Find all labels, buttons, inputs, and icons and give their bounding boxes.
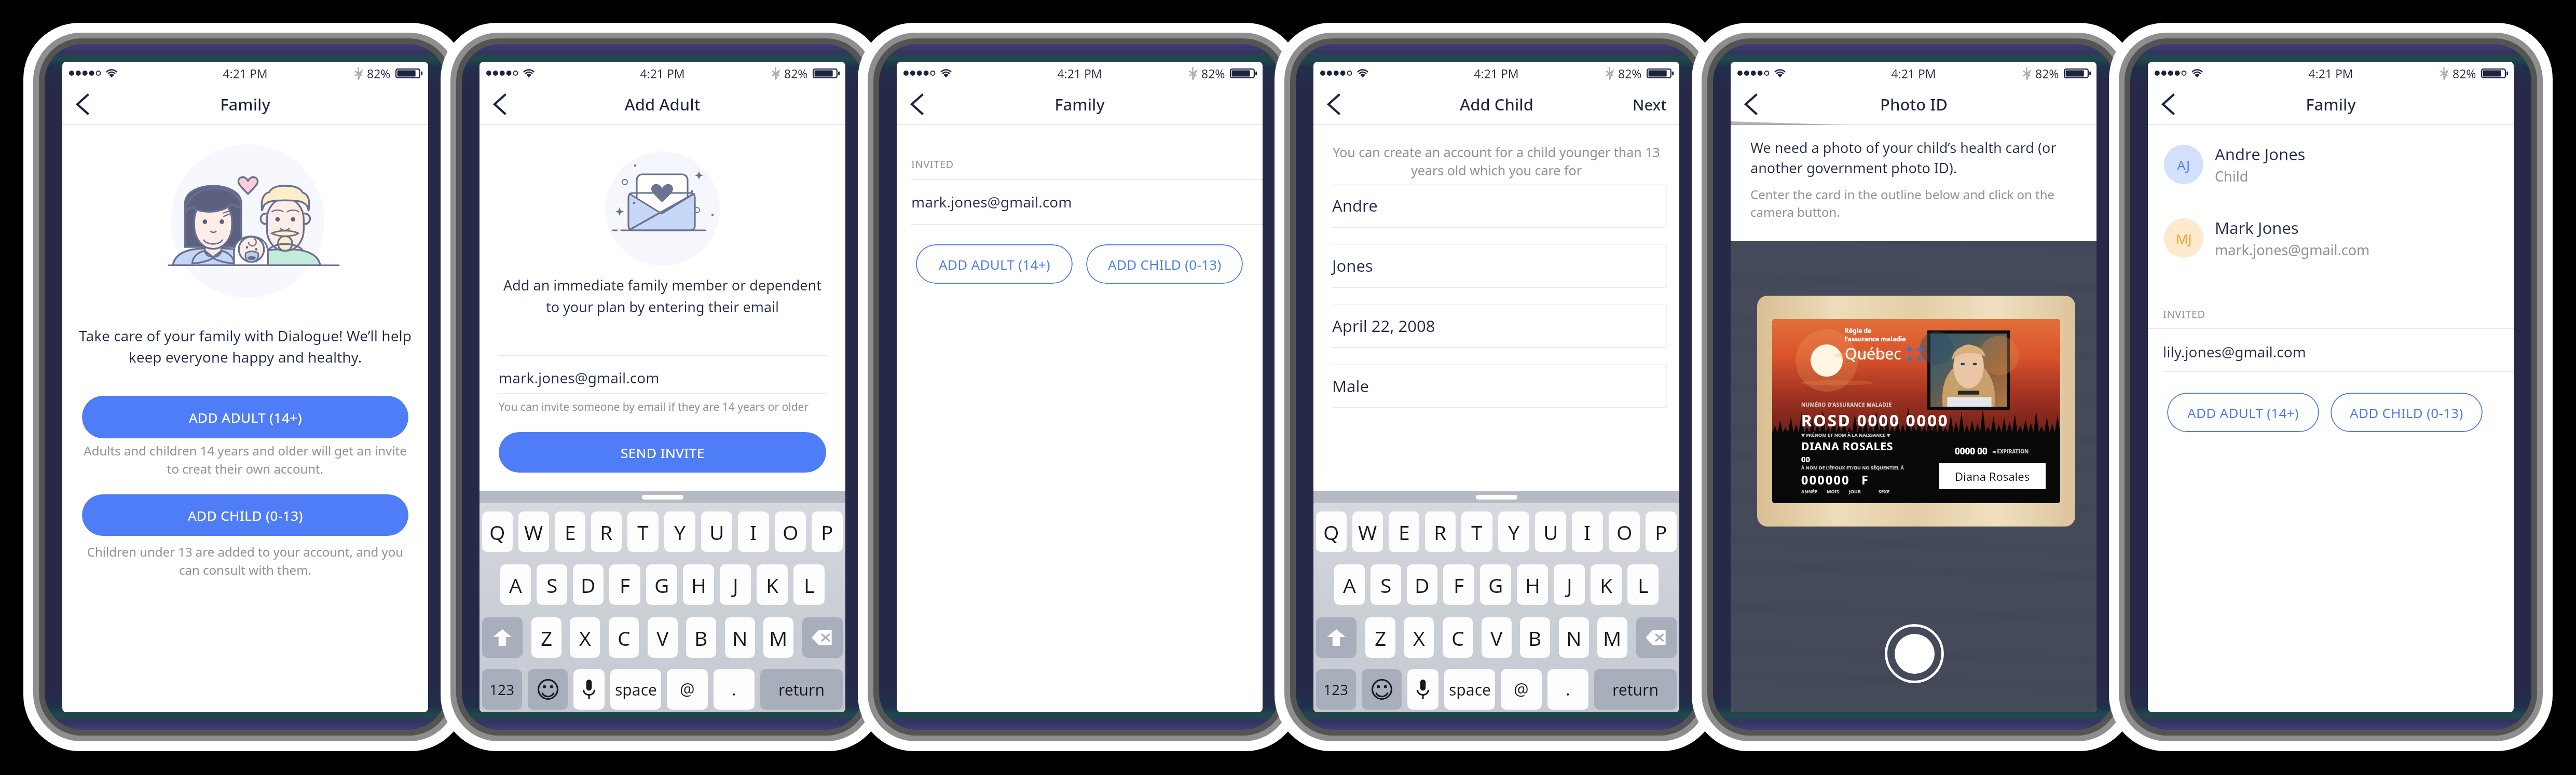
button[interactable]: W [1352,511,1383,552]
button[interactable]: Z [1365,617,1395,658]
button[interactable]: ADD CHILD (0-13) [82,494,408,536]
button[interactable]: S [1371,564,1401,605]
button[interactable]: Andre [1332,184,1666,227]
button[interactable]: Take photo [1885,624,1944,683]
button[interactable]: MJ [2164,212,2514,264]
button[interactable]: X [1404,617,1434,658]
button[interactable]: Emoji [1362,669,1402,710]
button[interactable]: L [793,564,825,605]
button[interactable]: Shift [1316,617,1356,658]
staticText: NUMÉRO D’ASSURANCE MALADIE [1801,401,1892,408]
button[interactable]: B [686,617,716,658]
button[interactable]: P [812,511,843,552]
button[interactable]: H [1517,564,1548,605]
button[interactable]: M [763,617,793,658]
button[interactable]: I [738,511,769,552]
button[interactable]: A [1334,564,1365,605]
button[interactable]: F [1443,564,1474,605]
button[interactable]: V [648,617,678,658]
staticText: JOUR [1849,488,1861,494]
button[interactable]: Back [1736,89,1766,119]
button[interactable]: . [714,669,755,710]
button[interactable]: ADD CHILD (0-13) [1086,244,1243,284]
button[interactable]: K [1591,564,1622,605]
button[interactable]: T [1461,511,1492,552]
button[interactable]: E [555,511,585,552]
button[interactable]: D [573,564,604,605]
button[interactable]: Backspace [802,617,843,658]
button[interactable]: I [1572,511,1603,552]
button[interactable]: N [1559,617,1589,658]
button[interactable]: P [1646,511,1677,552]
button[interactable]: Y [1498,511,1529,552]
button[interactable]: S [537,564,567,605]
staticText: April 22, 2008 [1332,315,1435,337]
button[interactable]: Dictation [1407,669,1438,710]
button[interactable]: SEND INVITE [499,432,826,473]
button[interactable]: Backspace [1636,617,1677,658]
button[interactable]: Back [2153,89,2183,119]
button[interactable]: April 22, 2008 [1332,304,1666,347]
button[interactable]: Z [531,617,561,658]
button[interactable]: D [1407,564,1437,605]
button[interactable]: ADD ADULT (14+) [916,244,1073,284]
button[interactable]: H [683,564,714,605]
button[interactable]: A [500,564,531,605]
button[interactable]: Next [1633,94,1667,115]
button[interactable]: C [609,617,639,658]
button[interactable]: R [1425,511,1456,552]
button[interactable]: U [1535,511,1566,552]
button[interactable]: E [1389,511,1419,552]
button[interactable]: J [720,564,751,605]
button[interactable]: M [1597,617,1627,658]
button[interactable]: . [1547,669,1588,710]
button[interactable]: U [701,511,732,552]
button[interactable]: Back [67,89,98,119]
button[interactable]: return [760,669,843,710]
button[interactable]: Q [482,511,513,552]
button[interactable]: O [1609,511,1640,552]
button[interactable]: V [1482,617,1512,658]
button[interactable]: Q [1316,511,1347,552]
button[interactable]: Y [664,511,695,552]
button[interactable]: Back [1319,89,1349,119]
button[interactable]: 123 [482,669,522,710]
button[interactable]: G [1480,564,1511,605]
button[interactable]: B [1520,617,1550,658]
button[interactable]: AJ [2164,139,2514,190]
staticText: G [1488,571,1503,599]
button[interactable]: return [1594,669,1677,710]
button[interactable]: @ [667,669,708,710]
staticText: Z [541,624,553,652]
button[interactable]: J [1554,564,1585,605]
button[interactable]: C [1443,617,1473,658]
staticText: lily.jones@gmail.com [2163,342,2306,362]
button[interactable]: N [725,617,755,658]
staticText: Male [1332,375,1369,397]
button[interactable]: ADD ADULT (14+) [82,396,408,438]
button[interactable]: O [775,511,806,552]
button[interactable]: W [518,511,549,552]
button[interactable]: Male [1332,364,1666,407]
button[interactable]: ADD CHILD (0-13) [2331,393,2483,432]
button[interactable]: Shift [482,617,523,658]
button[interactable]: Back [902,89,932,119]
button[interactable]: @ [1501,669,1542,710]
button[interactable]: R [591,511,622,552]
button[interactable]: L [1627,564,1659,605]
button[interactable]: Back [485,89,515,119]
button[interactable]: Dictation [573,669,605,710]
button[interactable]: space [610,669,661,710]
button[interactable]: T [627,511,659,552]
button[interactable]: F [609,564,640,605]
button[interactable]: Emoji [528,669,568,710]
button[interactable]: Jones [1332,244,1666,287]
staticText: I [750,518,757,546]
button[interactable]: K [757,564,788,605]
button[interactable]: ADD ADULT (14+) [2167,393,2319,432]
button[interactable]: X [570,617,600,658]
staticText: AJ [2177,156,2190,174]
button[interactable]: G [646,564,677,605]
button[interactable]: 123 [1316,669,1356,710]
button[interactable]: space [1444,669,1495,710]
